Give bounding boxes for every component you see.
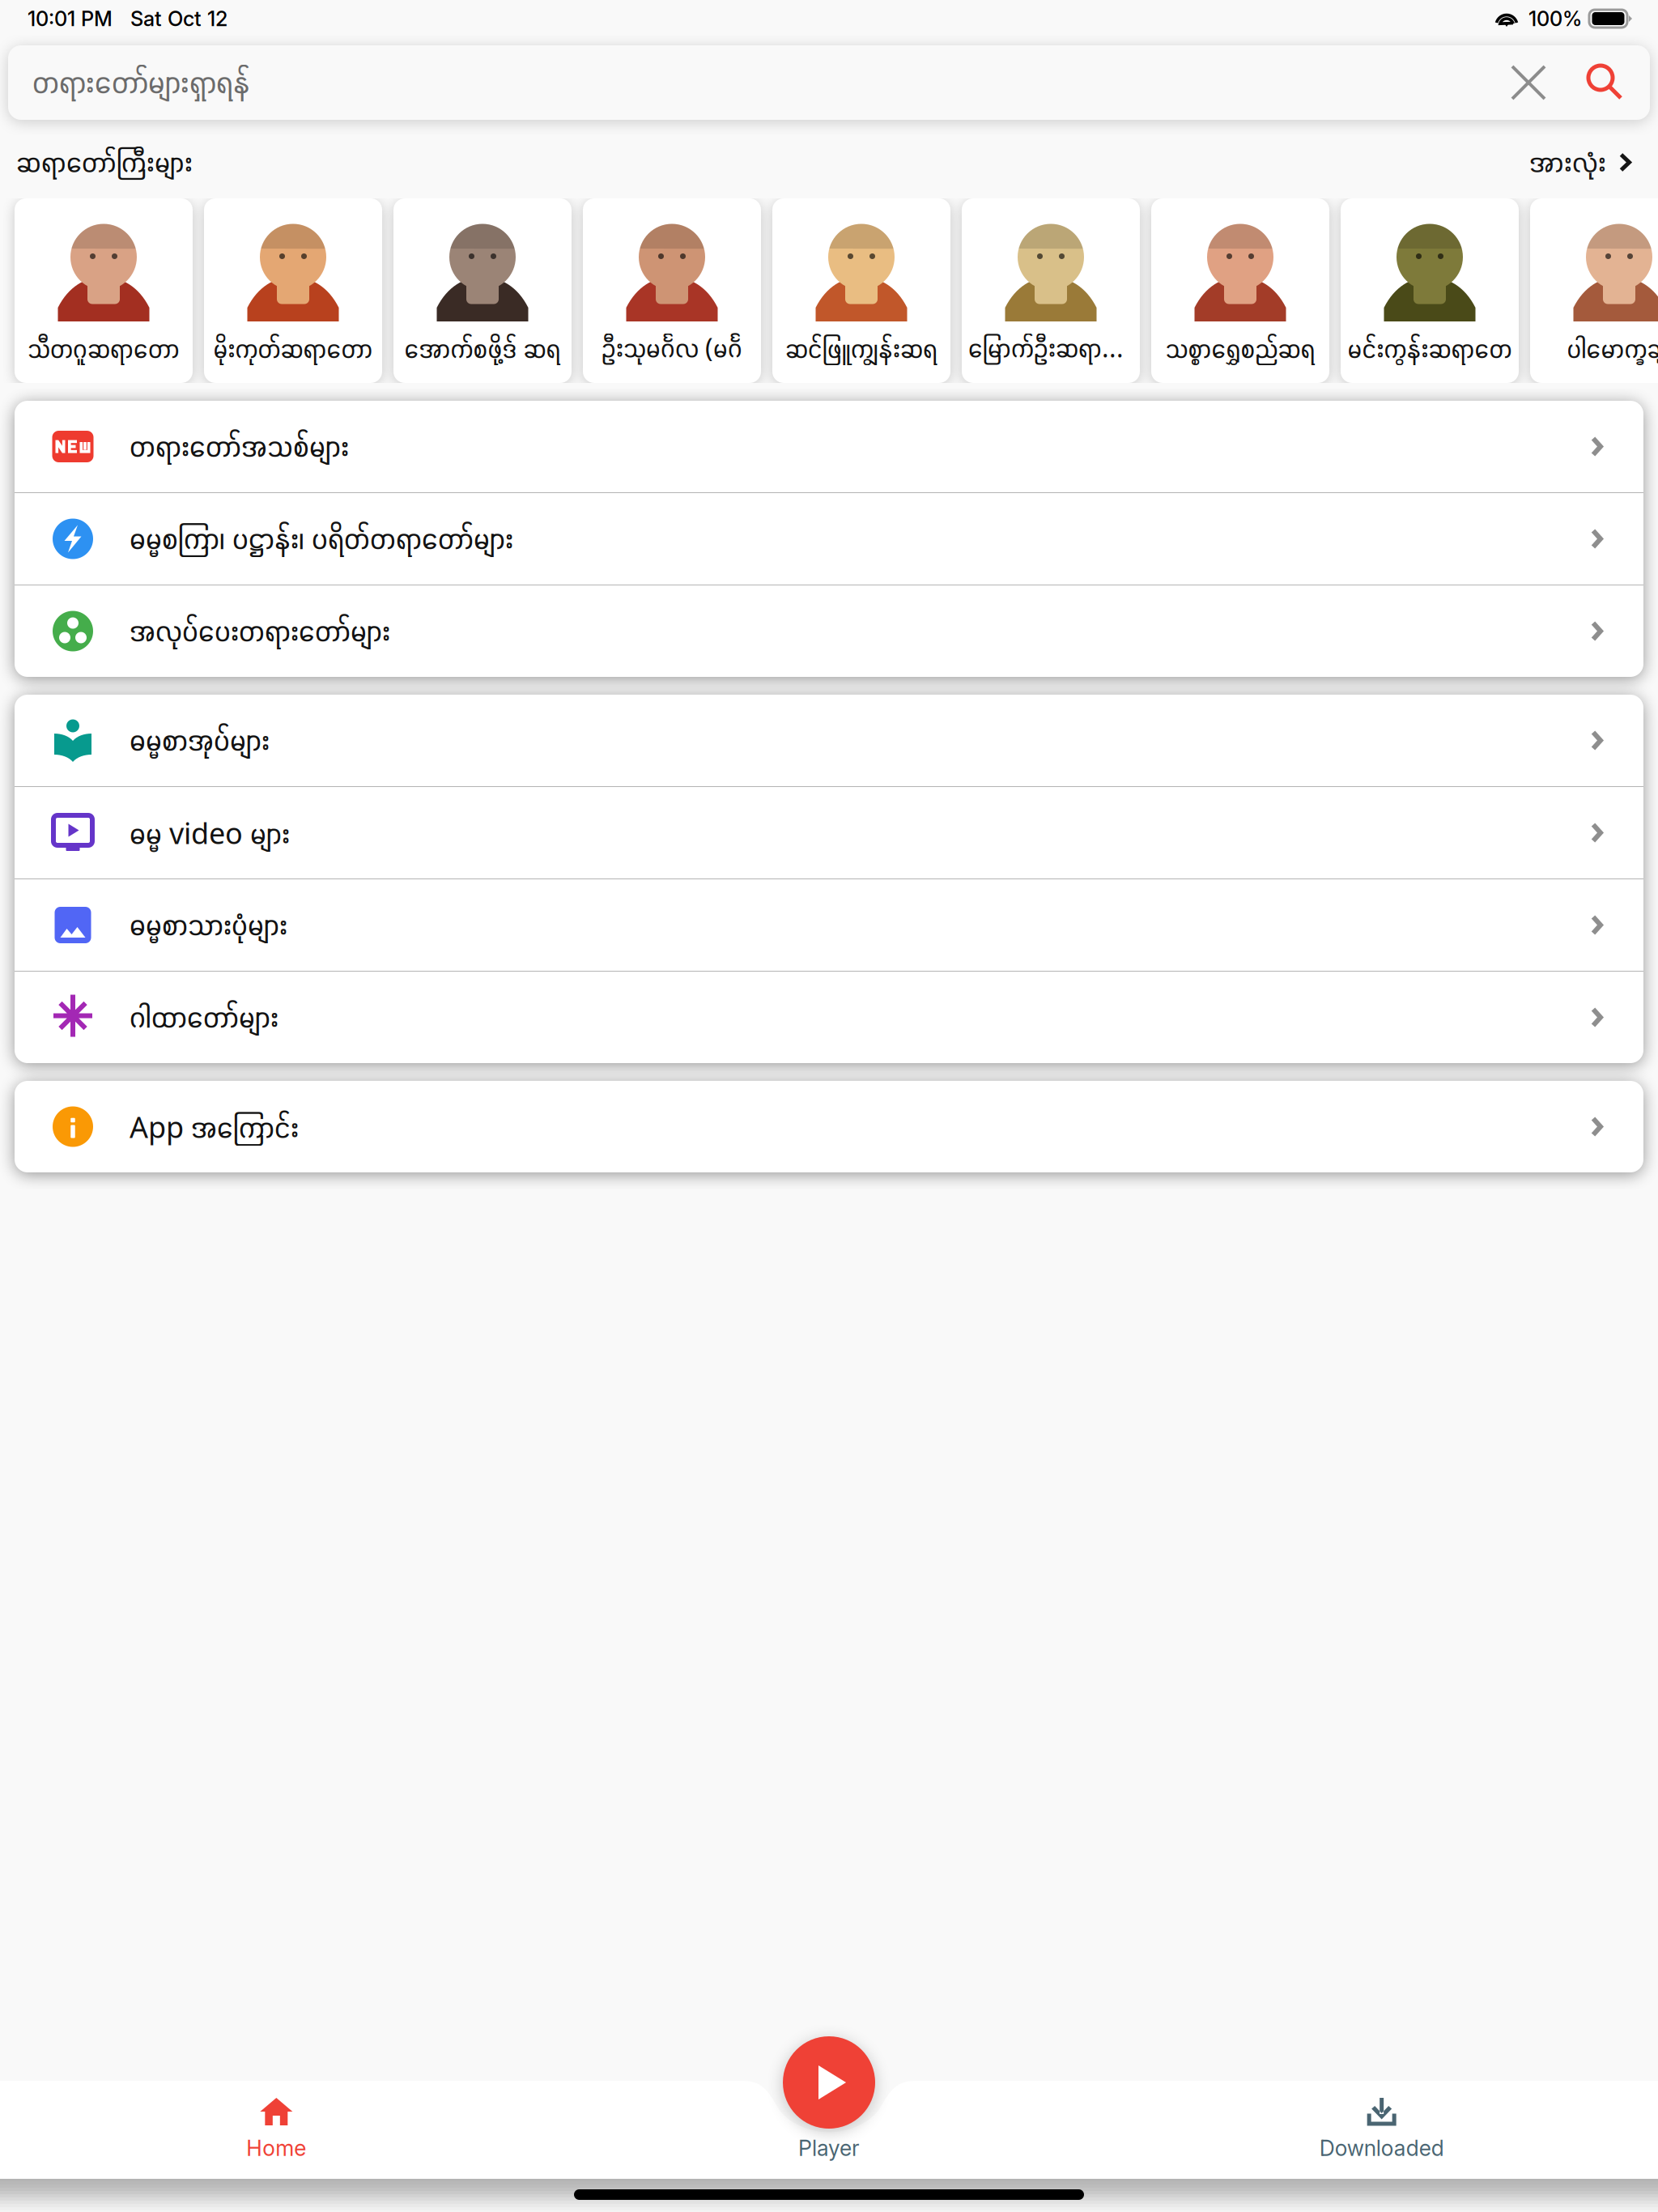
staticText: ဓမ္မစာအုပ်များ (130, 722, 270, 759)
staticText: အောက်စဖို့ဒ် ဆရ (404, 333, 561, 365)
button[interactable]: Player (553, 2081, 1105, 2180)
button[interactable]: ဆင်ဖြူကျွန်းဆရ (772, 198, 950, 383)
staticText: ဦးသုမင်္ဂလ (မင်္ဂ (602, 330, 742, 365)
staticText: Sat Oct 12 (130, 6, 227, 31)
button[interactable]: Search (1582, 60, 1627, 105)
staticText: ဂါထာတော်များ (130, 999, 278, 1036)
button[interactable]: ဦးသုမင်္ဂလ (မင်္ဂ (583, 198, 761, 383)
staticText: တရားတော်များရှာရန် (32, 64, 250, 102)
staticText: ဓမ္မစကြာ၊ ပဋ္ဌာန်း၊ ပရိတ်တရာတော်များ (130, 521, 513, 557)
staticText: မင်းကွန်းဆရာတေ (1348, 333, 1512, 365)
staticText: မိုးကုတ်ဆရာတော (213, 333, 373, 365)
button[interactable]: ဓမ္မစာသားပုံများ (15, 879, 1643, 971)
staticText: ဓမ္မစာသားပုံများ (130, 907, 287, 943)
staticText: မြောက်ဦးဆရာတေ (968, 330, 1133, 365)
staticText: သစ္စာရွှေစည်ဆရ (1165, 333, 1315, 365)
button[interactable]: ဓမ္မ video များ (15, 787, 1643, 878)
button[interactable]: အားလုံး (1529, 137, 1631, 188)
button[interactable]: သီတဂူဆရာတော (15, 198, 193, 383)
staticText: အားလုံး (1529, 145, 1606, 180)
staticText: တရားတော်အသစ်များ (130, 428, 349, 465)
staticText: Home (246, 2135, 306, 2161)
button[interactable]: မြောက်ဦးဆရာတေ (962, 198, 1140, 383)
staticText: 10:01 PM (28, 6, 113, 31)
staticText: Downloaded (1319, 2135, 1444, 2161)
button[interactable]: ပါမောက္ခချု (1530, 198, 1658, 383)
staticText: ဓမ္မ video များ (130, 813, 290, 853)
staticText: Player (798, 2135, 860, 2161)
staticText: App အကြောင်း (130, 1107, 299, 1146)
staticText: ဆရာတော်ကြီးများ (16, 145, 193, 180)
button[interactable]: ဓမ္မစာအုပ်များ (15, 695, 1643, 786)
button[interactable]: အောက်စဖို့ဒ် ဆရ (393, 198, 572, 383)
staticText: ပါမောက္ခချု (1567, 333, 1658, 365)
button[interactable]: Player (783, 2036, 875, 2129)
button[interactable]: Downloaded (1105, 2081, 1658, 2180)
staticText: ဆင်ဖြူကျွန်းဆရ (785, 333, 937, 365)
button[interactable]: ဓမ္မစကြာ၊ ပဋ္ဌာန်း၊ ပရိတ်တရာတော်များ (15, 493, 1643, 585)
button[interactable]: App အကြောင်း (15, 1081, 1643, 1172)
button[interactable]: ဂါထာတော်များ (15, 972, 1643, 1063)
staticText: သီတဂူဆရာတော (28, 333, 180, 365)
button[interactable]: သစ္စာရွှေစည်ဆရ (1151, 198, 1329, 383)
button[interactable]: တရားတော်အသစ်များ (15, 401, 1643, 492)
button[interactable]: Home (0, 2081, 553, 2180)
button[interactable]: အလုပ်ပေးတရားတော်များ (15, 585, 1643, 677)
button[interactable]: Clear search (1506, 60, 1551, 105)
staticText: အလုပ်ပေးတရားတော်များ (130, 613, 390, 650)
button[interactable]: မိုးကုတ်ဆရာတော (204, 198, 382, 383)
staticText: 100% (1528, 6, 1582, 31)
button[interactable]: မင်းကွန်းဆရာတေ (1341, 198, 1519, 383)
